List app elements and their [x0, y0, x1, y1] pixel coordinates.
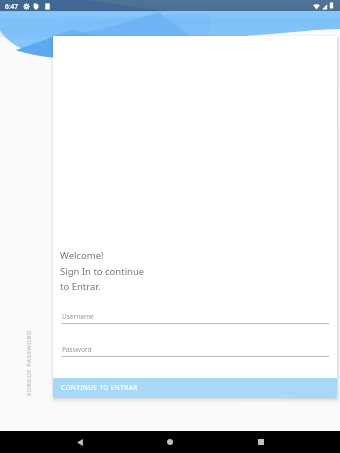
button[interactable]: Back: [69, 431, 91, 453]
staticText: Username: [62, 312, 94, 321]
button[interactable]: Recent apps: [250, 431, 272, 453]
button[interactable]: FORGOT PASSWORD: [20, 323, 38, 403]
button[interactable]: Home: [159, 431, 181, 453]
staticText: Sign In to continue: [60, 265, 145, 278]
staticText: CONTINUE TO ENTRAR: [61, 383, 138, 392]
staticText: 6:47: [5, 2, 18, 11]
staticText: Welcome!: [60, 249, 104, 262]
button[interactable]: CONTINUE TO ENTRAR: [53, 378, 337, 397]
staticText: Password: [62, 345, 92, 354]
staticText: to Entrar.: [60, 280, 101, 293]
staticText: FORGOT PASSWORD: [25, 330, 33, 396]
